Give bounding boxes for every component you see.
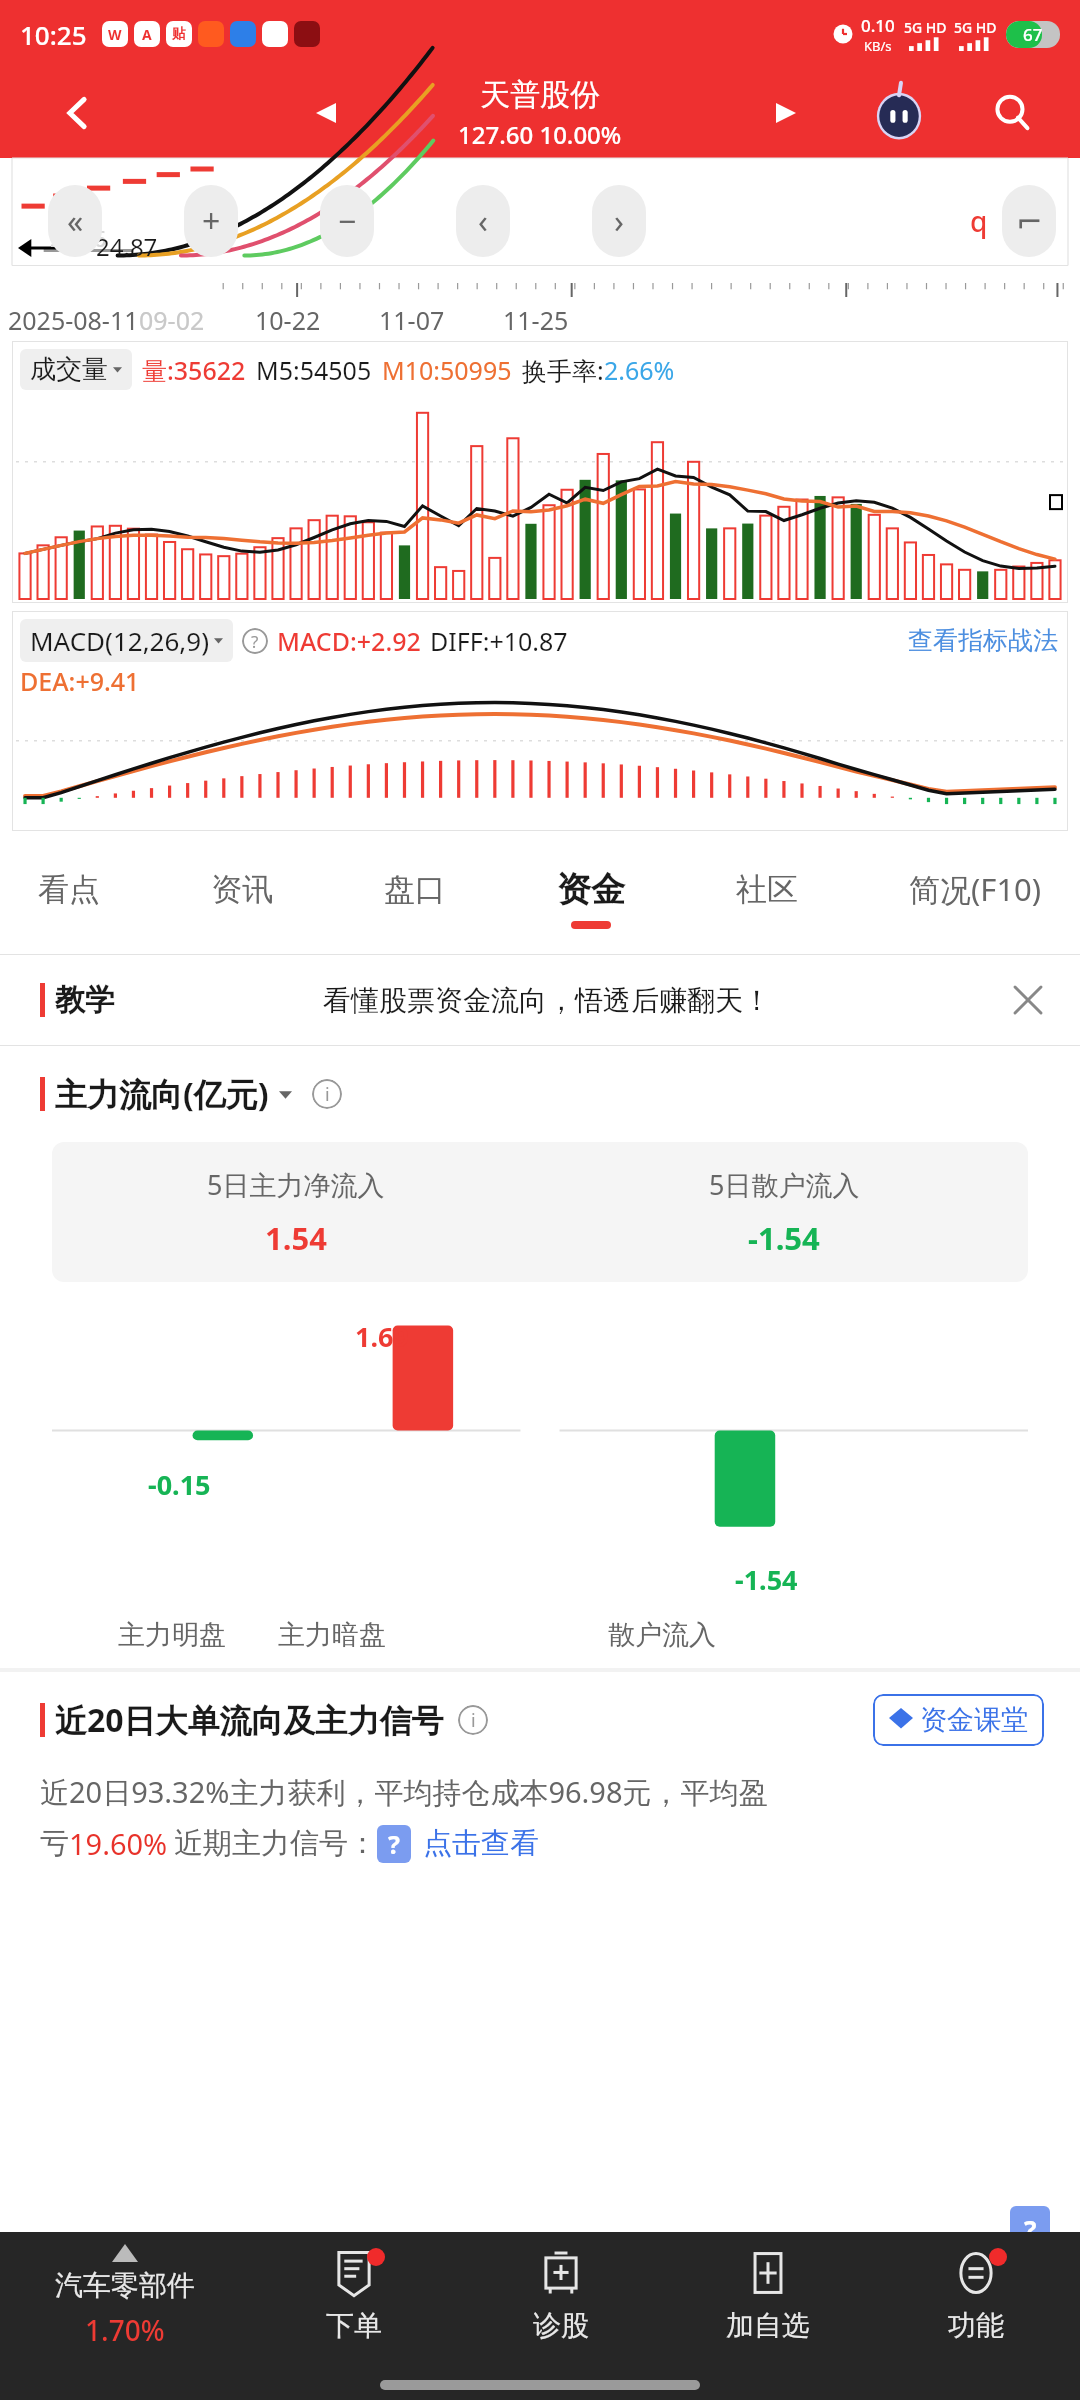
staticText: 10:25 [20,17,87,52]
button[interactable]: 5日主力净流入 [52,1142,1028,1282]
staticText: 19.60% [69,1824,168,1863]
staticText: 看点 [38,870,100,909]
staticText: 5日散户流入 [709,1166,860,1203]
staticText: 1.54 [265,1217,327,1259]
button[interactable]: 点击查看 [423,1825,539,1862]
button[interactable]: 汽车零部件 [0,2232,250,2400]
button[interactable]: Previous stock [300,87,352,139]
staticText: DIFF:+10.87 [430,624,568,658]
staticText: 11-25 [503,303,569,337]
button[interactable]: Close banner [1000,972,1056,1028]
staticText: 10-22 [255,303,321,337]
staticText: › [614,199,624,243]
button[interactable]: Search [982,82,1044,144]
staticText: -1.54 [748,1217,820,1259]
staticText: 下单 [326,2308,382,2343]
staticText: 近20日93.32%主力获利，平均持仓成本96.98元，平均盈 [40,1772,768,1812]
staticText: 成交量 [30,353,108,386]
button[interactable]: 社区 [732,862,802,935]
button[interactable]: 看点 [34,862,104,935]
button[interactable]: 资讯 [207,862,277,935]
staticText: 资金 [557,868,625,911]
staticText: 67 [1023,23,1043,46]
button[interactable]: 天普股份 [458,76,622,151]
button[interactable]: Back [50,85,106,141]
staticText: 2025-08-11 [8,303,139,337]
button[interactable]: 诊股 [457,2232,664,2400]
button[interactable]: 主力流向(亿元) [40,1072,1080,1116]
staticText: 5G HD [904,18,947,37]
button[interactable]: Zoom in [184,185,238,257]
staticText: ‹ [478,199,488,243]
staticText: « [67,199,84,243]
staticText: ⌐ [1016,203,1043,240]
staticText: 亏 [40,1825,69,1862]
staticText: 教学 [55,981,115,1019]
staticText: 1.70% [85,2311,165,2349]
button[interactable]: 简况(F10) [905,860,1046,936]
staticText: 功能 [948,2308,1004,2343]
staticText: 09-02 [139,303,205,337]
staticText: 近期主力信号： [174,1825,377,1862]
staticText: 资讯 [211,870,273,909]
button[interactable]: 盘口 [380,862,450,935]
staticText: 量:35622 [142,353,246,387]
staticText: 社区 [736,870,798,909]
staticText: q [970,202,988,240]
staticText: 0.10 [861,14,895,37]
staticText: 127.60 10.00% [458,118,622,151]
staticText: 主力明盘 [118,1618,226,1652]
button[interactable]: 成交量 [30,353,122,386]
staticText: ? [251,630,259,653]
button[interactable]: 功能 [872,2232,1080,2400]
button[interactable]: 资金课堂 [873,1694,1044,1746]
staticText: 11-07 [379,303,445,337]
button[interactable]: Next stock [760,87,812,139]
staticText: + [202,199,221,243]
staticText: KB/s [864,37,892,55]
staticText: 近20日大单流向及主力信号 [55,1698,444,1742]
staticText: 5G HD [954,18,997,37]
staticText: 贴 [172,25,186,43]
button[interactable]: MACD(12,26,9) [30,623,223,658]
button[interactable]: AI assistant [868,82,930,144]
staticText: W [108,25,122,44]
staticText: 换手率: [522,353,604,387]
staticText: ? [1024,2212,1037,2247]
button[interactable]: 查看指标战法 [908,625,1068,656]
button[interactable]: Zoom out [320,185,374,257]
staticText: 诊股 [533,2308,589,2343]
staticText: 2.66% [604,353,675,387]
staticText: 查看指标战法 [908,625,1058,656]
staticText: 看懂股票资金流向，悟透后赚翻天！ [323,983,771,1018]
staticText: 24.87 [96,230,158,263]
button[interactable]: 加自选 [664,2232,872,2400]
staticText: ? [388,1827,400,1861]
staticText: M10:50995 [382,353,512,387]
staticText: 加自选 [726,2308,810,2343]
button[interactable]: Next [592,185,646,257]
button[interactable]: 教学 [0,955,1080,1045]
staticText: A [142,25,152,44]
button[interactable]: 资金 [553,860,629,937]
staticText: − [338,199,357,243]
staticText: 1.69 [355,1318,409,1355]
staticText: 点击查看 [423,1825,539,1862]
button[interactable]: Help [1010,2206,1050,2252]
staticText: 散户流入 [608,1618,716,1652]
button[interactable]: Scroll left fast [48,185,102,257]
staticText: 20.06 [50,223,107,253]
button[interactable]: Fullscreen [1002,185,1056,257]
staticText: 主力暗盘 [278,1618,386,1652]
staticText: 天普股份 [480,76,600,114]
button[interactable]: Indicator help [242,628,268,654]
button[interactable]: Info [312,1079,342,1109]
staticText: 主力流向(亿元) [55,1072,269,1116]
staticText: M5:54505 [256,353,372,387]
button[interactable]: 下单 [250,2232,457,2400]
button[interactable]: Info [458,1705,488,1735]
staticText: MACD:+2.92 [277,624,421,658]
staticText: 5日主力净流入 [207,1166,385,1203]
button[interactable]: Previous [456,185,510,257]
staticText: -0.15 [148,1466,211,1503]
